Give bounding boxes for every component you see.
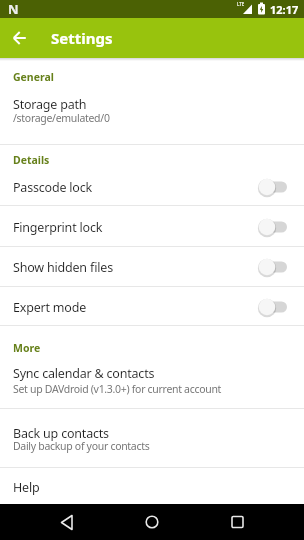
button[interactable]	[48, 504, 86, 540]
staticText: Settings	[51, 28, 113, 48]
button[interactable]	[0, 409, 304, 467]
button[interactable]	[0, 247, 304, 286]
button[interactable]	[0, 468, 304, 504]
staticText: Fingerprint lock	[13, 219, 103, 236]
button[interactable]	[0, 206, 304, 246]
staticText: More	[13, 341, 41, 355]
button[interactable]	[0, 86, 304, 144]
button[interactable]	[218, 504, 256, 540]
button[interactable]	[0, 356, 304, 408]
staticText: General	[13, 70, 54, 84]
staticText: Storage path	[13, 96, 87, 113]
staticText: Sync calendar & contacts	[13, 365, 155, 382]
staticText: /storage/emulated/0	[13, 111, 110, 125]
button[interactable]	[0, 18, 40, 58]
staticText: 12:17	[270, 2, 299, 17]
staticText: Help	[13, 479, 40, 496]
staticText: Back up contacts	[13, 425, 109, 442]
staticText: Passcode lock	[13, 179, 92, 196]
staticText: Expert mode	[13, 299, 87, 316]
staticText: Daily backup of your contacts	[13, 439, 150, 453]
button[interactable]	[133, 504, 171, 540]
staticText: Details	[13, 153, 50, 167]
staticText: Show hidden files	[13, 259, 113, 276]
button[interactable]	[0, 287, 304, 325]
staticText: N	[8, 0, 19, 18]
button[interactable]	[0, 167, 304, 205]
staticText: LTE	[237, 1, 245, 7]
staticText: Set up DAVdroid (v1.3.0+) for current ac…	[13, 382, 222, 396]
